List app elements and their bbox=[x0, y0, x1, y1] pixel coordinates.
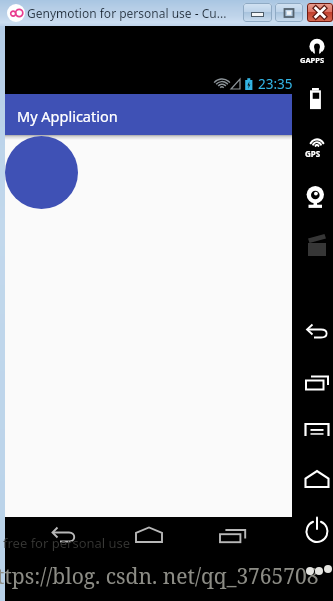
button[interactable]: Record screen bbox=[292, 234, 333, 260]
button[interactable]: Back bbox=[38, 521, 92, 551]
staticText: GAPPS bbox=[300, 55, 325, 65]
button[interactable]: Recents bbox=[207, 521, 259, 551]
staticText: My Application bbox=[17, 106, 118, 126]
staticText: Genymotion for personal use - Cu... bbox=[27, 5, 227, 21]
button[interactable]: Home bbox=[123, 521, 175, 551]
button[interactable]: Back bbox=[292, 323, 333, 341]
button[interactable]: Power bbox=[292, 518, 333, 541]
staticText: ttps://blog. csdn. net/qq_3765708 bbox=[0, 562, 319, 591]
button[interactable]: Menu bbox=[292, 420, 333, 440]
button[interactable]: Minimize bbox=[243, 3, 272, 22]
button[interactable]: Recent apps bbox=[292, 372, 333, 394]
button[interactable]: Avatar bbox=[5, 136, 78, 209]
staticText: GPS bbox=[305, 148, 321, 159]
staticText: 23:35 bbox=[258, 75, 293, 93]
staticText: free for personal use bbox=[3, 534, 131, 552]
button[interactable]: GAPPS bbox=[292, 38, 333, 56]
button[interactable]: Home bbox=[292, 469, 333, 489]
button[interactable]: Maximize bbox=[275, 3, 303, 22]
button[interactable]: Camera bbox=[292, 185, 333, 210]
button[interactable]: Close bbox=[307, 3, 333, 22]
button[interactable]: My Application bbox=[5, 94, 292, 135]
button[interactable]: Battery bbox=[292, 86, 333, 112]
button[interactable]: GPS bbox=[292, 137, 333, 149]
